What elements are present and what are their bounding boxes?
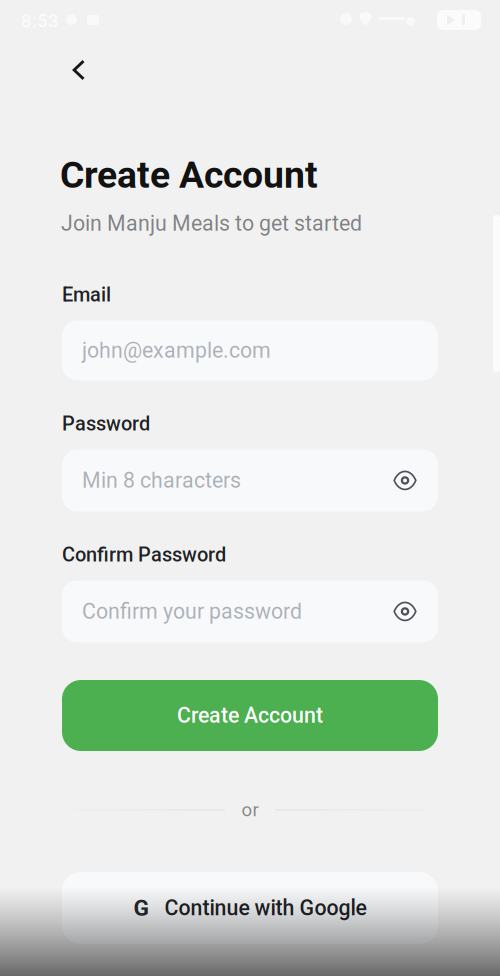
button[interactable]: Show password [389, 449, 421, 511]
staticText: Continue with Google [164, 895, 366, 920]
staticText: or [241, 799, 258, 821]
button[interactable]: G [62, 872, 438, 944]
staticText: Confirm Password [62, 543, 226, 566]
staticText: Password [62, 412, 150, 435]
button[interactable]: Show confirm password [389, 580, 421, 642]
button[interactable]: Back [57, 48, 101, 92]
staticText: G [133, 895, 148, 921]
button[interactable]: Create Account [62, 680, 438, 751]
staticText: Create Account [60, 153, 318, 197]
staticText: Email [62, 283, 111, 306]
staticText: 8:53 [21, 10, 59, 32]
staticText: Min 8 characters [82, 468, 241, 493]
staticText: Create Account [177, 703, 323, 728]
staticText: Confirm your password [82, 599, 302, 624]
staticText: john@example.com [82, 338, 271, 363]
staticText: Join Manju Meals to get started [61, 211, 362, 236]
